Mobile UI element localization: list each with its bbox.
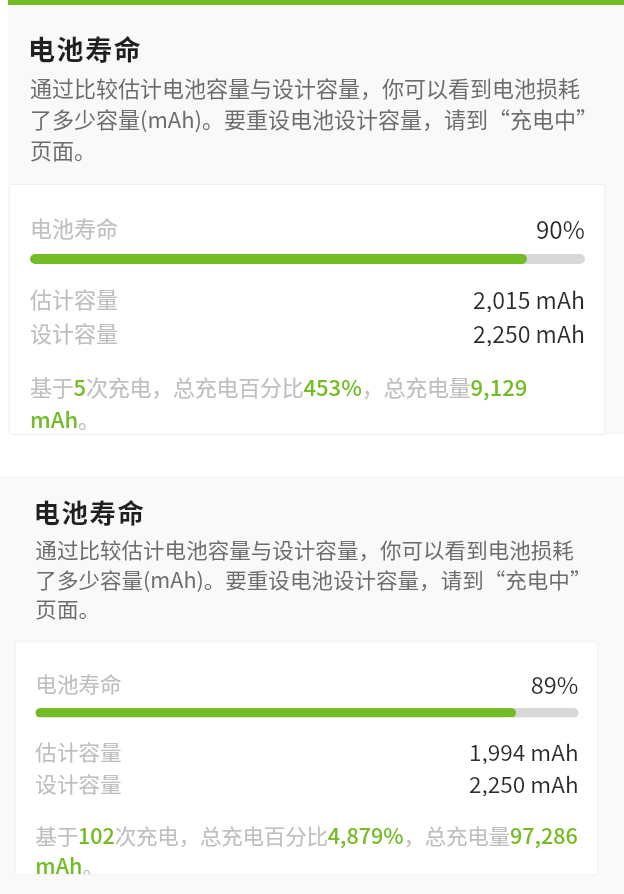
staticText: 2,250 mAh [469,767,579,796]
staticText: 估计容量 [35,735,122,763]
staticText: 电池寿命 [30,211,119,241]
staticText: 电池寿命 [33,493,146,530]
staticText: 基于5次充电，总充电百分比453%，总充电量9,129 mAh。 [30,370,528,434]
staticText: 估计容量 [30,282,119,312]
staticText: 89% [531,667,579,696]
staticText: 通过比较估计电池容量与设计容量，你可以看到电池损耗 了多少容量(mAh)。要重设… [30,71,598,165]
staticText: 1,994 mAh [469,735,579,763]
button[interactable]: 电池寿命 [15,641,598,875]
staticText: 2,015 mAh [473,282,585,312]
staticText: 通过比较估计电池容量与设计容量，你可以看到电池损耗 了多少容量(mAh)。要重设… [35,533,591,623]
staticText: 设计容量 [30,316,119,346]
staticText: 90% [536,211,585,241]
staticText: 设计容量 [35,767,122,796]
staticText: 2,250 mAh [473,316,585,346]
button[interactable]: 电池寿命 [9,184,605,435]
staticText: 电池寿命 [35,667,122,696]
staticText: 基于102次充电，总充电百分比4,879%，总充电量97,286 mAh。 [35,819,579,875]
staticText: 电池寿命 [28,29,143,68]
